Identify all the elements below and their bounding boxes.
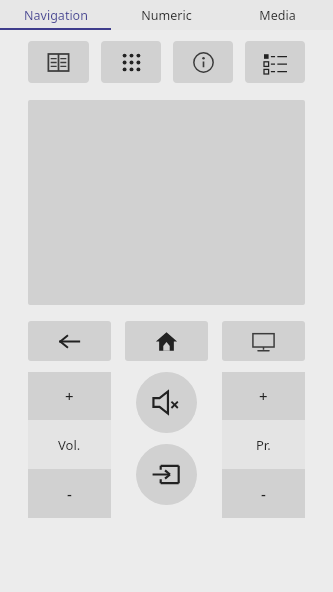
button[interactable]: Pr. down <box>222 469 305 518</box>
button[interactable]: Back <box>28 321 111 361</box>
button[interactable]: Source <box>222 321 305 361</box>
button[interactable]: Pr. up <box>222 372 305 420</box>
staticText: + <box>65 386 74 406</box>
staticText: Navigation <box>24 7 88 24</box>
button[interactable]: Home <box>125 321 208 361</box>
button[interactable]: Info <box>173 41 233 83</box>
button[interactable]: Mute <box>136 372 197 433</box>
button[interactable]: Navigation <box>0 0 111 30</box>
button[interactable]: Vol. up <box>28 372 111 420</box>
staticText: - <box>67 484 72 504</box>
staticText: Numeric <box>141 7 192 24</box>
button[interactable]: Numeric <box>111 0 222 30</box>
staticText: Media <box>259 7 296 24</box>
staticText: Vol. <box>58 436 81 454</box>
staticText: - <box>261 484 266 504</box>
button[interactable]: Vol. down <box>28 469 111 518</box>
button[interactable]: Guide <box>28 41 89 83</box>
button[interactable]: Media <box>222 0 333 30</box>
staticText: Pr. <box>256 436 271 454</box>
button[interactable]: Input <box>136 444 197 505</box>
staticText: + <box>259 386 268 406</box>
button[interactable]: Apps <box>101 41 161 83</box>
button[interactable]: Program list <box>245 41 305 83</box>
